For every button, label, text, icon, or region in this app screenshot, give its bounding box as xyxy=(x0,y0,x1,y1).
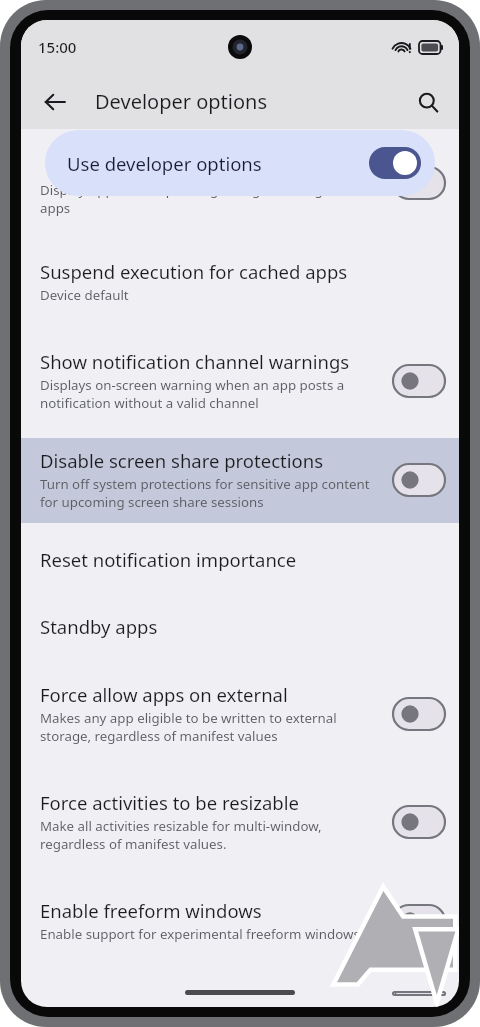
button[interactable]: Toggle off xyxy=(393,698,445,730)
staticText: Device default xyxy=(40,286,129,304)
button[interactable]: Toggle off xyxy=(393,167,445,199)
button[interactable]: Suspend execution for cached apps xyxy=(21,249,459,316)
button[interactable]: Display App Not Responding dialog for ba… xyxy=(21,181,459,217)
button[interactable]: Disable screen share protections xyxy=(21,438,459,523)
staticText: Show notification channel warnings xyxy=(40,349,350,374)
button[interactable]: Toggle on xyxy=(369,147,421,179)
staticText: Displays on-screen warning when an app p… xyxy=(40,376,345,412)
staticText: Enable freeform windows xyxy=(40,898,262,923)
button[interactable]: Force activities to be resizable xyxy=(21,780,459,865)
staticText: Disable screen share protections xyxy=(40,448,323,473)
staticText: Standby apps xyxy=(40,614,158,639)
button[interactable]: Toggle off xyxy=(393,464,445,496)
button[interactable]: Force allow apps on external xyxy=(21,672,459,757)
button[interactable]: Show notification channel warnings xyxy=(21,339,459,424)
staticText: Use developer options xyxy=(67,151,369,176)
staticText: Enable support for experimental freeform… xyxy=(40,925,364,943)
button[interactable]: Back xyxy=(33,80,77,124)
button[interactable]: Toggle off xyxy=(393,905,445,937)
button[interactable]: Use developer options xyxy=(45,130,435,196)
button[interactable]: Toggle off xyxy=(393,992,445,995)
button[interactable]: Standby apps xyxy=(21,604,459,651)
button[interactable]: Search xyxy=(406,80,450,124)
staticText: Suspend execution for cached apps xyxy=(40,259,348,284)
button[interactable]: Enable freeform windows xyxy=(21,888,459,955)
staticText: Makes any app eligible to be written to … xyxy=(40,709,337,745)
staticText: Force activities to be resizable xyxy=(40,790,299,815)
staticText: Display App Not Responding dialog for ba… xyxy=(40,181,361,217)
staticText: Make all activities resizable for multi-… xyxy=(40,817,322,853)
staticText: 15:00 xyxy=(38,37,77,57)
button[interactable]: Toggle off xyxy=(393,365,445,397)
staticText: Turn off system protections for sensitiv… xyxy=(40,475,370,511)
button[interactable]: Toggle off xyxy=(393,806,445,838)
staticText: Force allow apps on external xyxy=(40,682,288,707)
staticText: Developer options xyxy=(95,88,268,115)
button[interactable]: Force desktop mode xyxy=(21,982,459,1007)
staticText: Reset notification importance xyxy=(40,547,297,572)
staticText: Force desktop mode xyxy=(40,992,218,995)
button[interactable]: Reset notification importance xyxy=(21,537,459,584)
